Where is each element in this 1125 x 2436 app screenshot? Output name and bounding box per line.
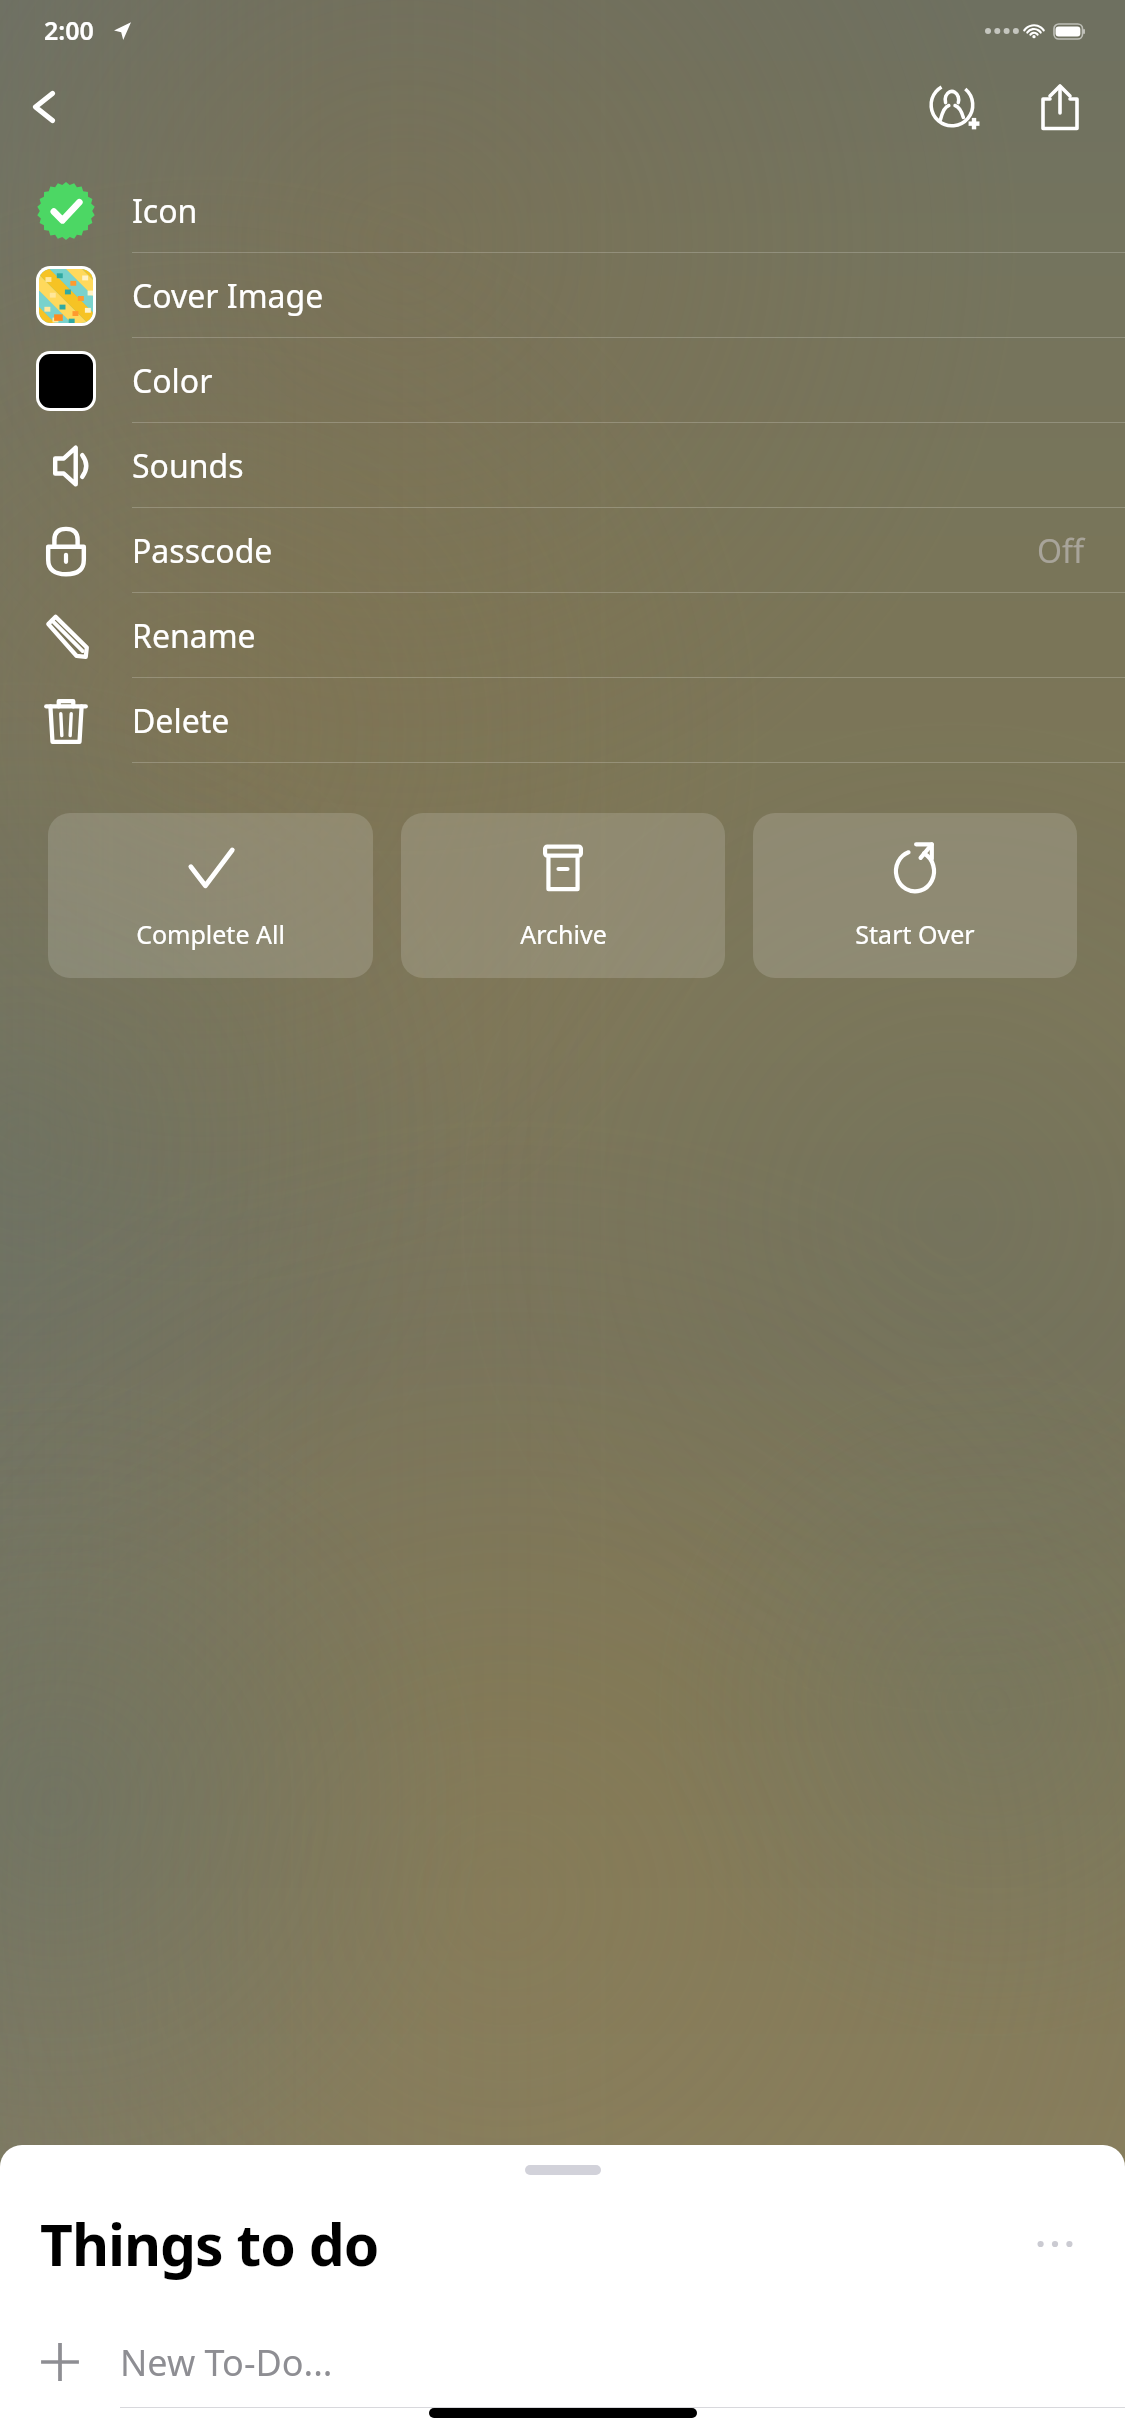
button[interactable]: New To-Do... <box>0 2317 1125 2407</box>
staticText: Archive <box>520 917 607 951</box>
staticText: New To-Do... <box>120 2338 333 2387</box>
staticText: Passcode <box>132 529 273 573</box>
staticText: Off <box>1037 529 1085 573</box>
button[interactable]: Passcode <box>0 508 1125 593</box>
button[interactable]: Start Over <box>753 813 1077 978</box>
button[interactable]: Icon <box>0 168 1125 253</box>
staticText: Cover Image <box>132 274 324 318</box>
staticText: Icon <box>132 189 198 233</box>
staticText: Sounds <box>132 444 244 488</box>
button[interactable]: Rename <box>0 593 1125 678</box>
button[interactable]: Add collaborator <box>917 70 991 144</box>
button[interactable]: Complete All <box>48 813 373 978</box>
staticText: Things to do <box>40 2205 379 2283</box>
staticText: Start Over <box>855 917 975 951</box>
button[interactable]: More options <box>1025 2214 1085 2274</box>
staticText: 2:00 <box>44 13 94 47</box>
button[interactable]: Color <box>0 338 1125 423</box>
button[interactable]: Share <box>1023 70 1097 144</box>
staticText: Complete All <box>136 917 285 951</box>
button[interactable]: Back <box>10 72 80 142</box>
staticText: Rename <box>132 614 256 658</box>
button[interactable]: Cover Image <box>0 253 1125 338</box>
button[interactable]: Delete <box>0 678 1125 763</box>
button[interactable]: Sounds <box>0 423 1125 508</box>
button[interactable]: Archive <box>401 813 725 978</box>
staticText: Delete <box>132 699 230 743</box>
staticText: Color <box>132 359 213 403</box>
